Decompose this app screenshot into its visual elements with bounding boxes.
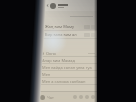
button[interactable]: Back (38, 0, 97, 11)
button[interactable]: Action (85, 95, 89, 99)
staticText: Бир кана ким ал (45, 32, 77, 37)
button[interactable]: Play (38, 23, 97, 31)
staticText: Чат (47, 95, 54, 100)
button[interactable]: Мен а салома сакбаан (38, 78, 97, 85)
button[interactable]: Action (79, 95, 83, 99)
button[interactable]: Action (73, 95, 77, 99)
staticText: Окно (46, 51, 56, 56)
other: Play (40, 25, 44, 29)
other: Back (46, 4, 49, 7)
button[interactable]: Анар ким Мамад (38, 57, 97, 64)
staticText: Мен а салома сакбаан (42, 79, 86, 84)
staticText: Мен (42, 72, 51, 77)
button[interactable]: Окно (38, 50, 97, 57)
button[interactable]: Мен кайда санан улка гуа (38, 64, 97, 71)
other: Play (40, 33, 44, 37)
button[interactable]: Мен (38, 71, 97, 78)
button[interactable]: Action (91, 95, 95, 99)
staticText: Жаң ким Маму (45, 24, 75, 29)
button[interactable]: Emoji (40, 95, 45, 100)
staticText: Мен кайда санан улка гуа (42, 65, 92, 70)
staticText: Анар ким Мамад (42, 58, 75, 63)
button[interactable]: Play (38, 31, 97, 39)
